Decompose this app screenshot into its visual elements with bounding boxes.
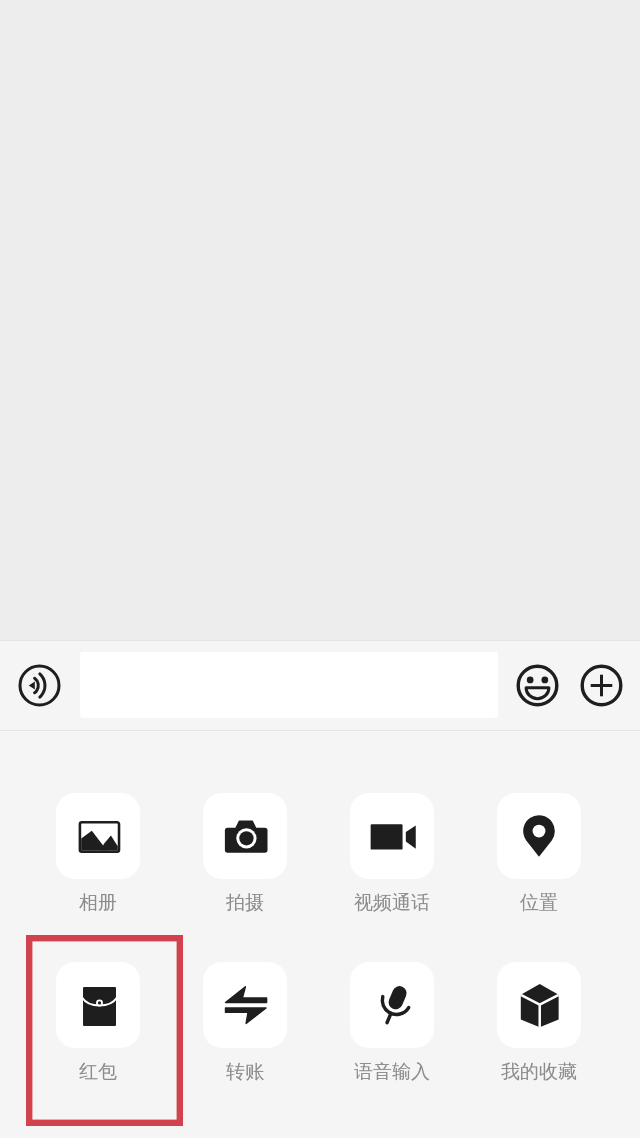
staticText: 转账 bbox=[226, 1060, 264, 1084]
staticText: 视频通话 bbox=[354, 891, 430, 915]
staticText: 相册 bbox=[79, 891, 117, 915]
staticText: 红包 bbox=[79, 1060, 117, 1084]
button[interactable]: 视频通话 bbox=[319, 793, 465, 915]
button[interactable]: 拍摄 bbox=[172, 793, 318, 915]
button[interactable]: More options bbox=[580, 664, 623, 707]
button[interactable]: 语音输入 bbox=[319, 962, 465, 1084]
staticText: 我的收藏 bbox=[501, 1060, 577, 1084]
staticText: 语音输入 bbox=[354, 1060, 430, 1084]
button[interactable]: 转账 bbox=[172, 962, 318, 1084]
button[interactable]: 红包 bbox=[25, 962, 171, 1084]
button[interactable]: Voice message bbox=[18, 664, 61, 707]
button[interactable]: 位置 bbox=[466, 793, 612, 915]
staticText: 拍摄 bbox=[226, 891, 264, 915]
button[interactable]: 相册 bbox=[25, 793, 171, 915]
button[interactable]: Emoji bbox=[516, 664, 559, 707]
button[interactable]: 我的收藏 bbox=[466, 962, 612, 1084]
staticText: 位置 bbox=[520, 891, 558, 915]
